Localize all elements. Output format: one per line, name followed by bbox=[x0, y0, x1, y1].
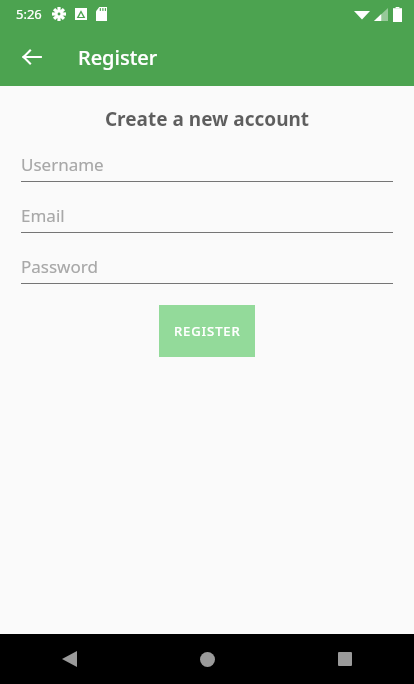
button[interactable]: Back bbox=[0, 634, 138, 684]
button[interactable]: Home bbox=[138, 634, 276, 684]
button[interactable]: Password bbox=[21, 255, 393, 284]
staticText: 5:26 bbox=[16, 5, 42, 23]
staticText: Create a new account bbox=[0, 106, 414, 132]
button[interactable]: Username bbox=[21, 153, 393, 182]
staticText: Register bbox=[78, 44, 158, 71]
staticText: Password bbox=[21, 255, 98, 278]
staticText: Username bbox=[21, 153, 104, 176]
staticText: REGISTER bbox=[174, 322, 241, 340]
button[interactable]: REGISTER bbox=[159, 305, 255, 357]
staticText: Email bbox=[21, 204, 65, 227]
button[interactable]: Email bbox=[21, 204, 393, 233]
button[interactable]: Back bbox=[8, 33, 56, 81]
button[interactable]: Recent apps bbox=[276, 634, 414, 684]
